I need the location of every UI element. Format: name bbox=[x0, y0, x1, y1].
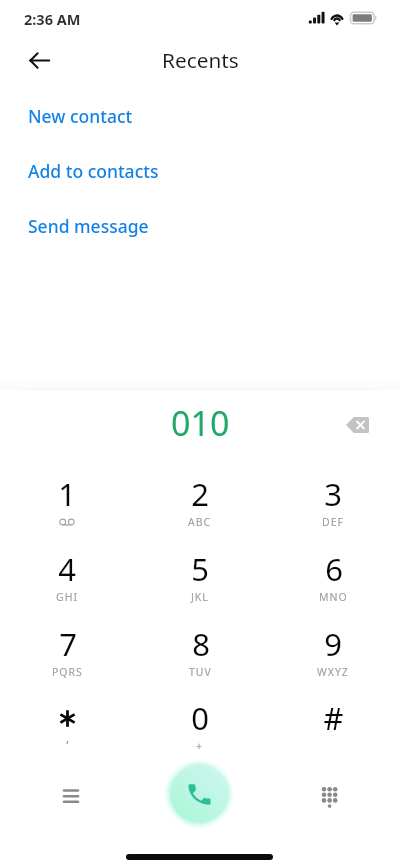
button[interactable]: 7 bbox=[23, 623, 111, 691]
staticText: MNO bbox=[319, 590, 348, 604]
staticText: DEF bbox=[322, 515, 344, 529]
staticText: 1 bbox=[58, 473, 76, 515]
staticText: TUV bbox=[189, 665, 212, 679]
button[interactable]: Dialpad bbox=[306, 773, 351, 818]
staticText: 6 bbox=[325, 548, 343, 590]
button[interactable]: # bbox=[289, 697, 377, 765]
button[interactable]: Back bbox=[18, 39, 60, 81]
staticText: ABC bbox=[188, 515, 212, 529]
button[interactable]: , bbox=[23, 697, 111, 765]
staticText: + bbox=[196, 739, 204, 753]
button[interactable]: 4 bbox=[23, 548, 111, 616]
button[interactable]: Call history bbox=[48, 773, 93, 818]
staticText: # bbox=[323, 697, 344, 739]
button[interactable]: New contact bbox=[0, 96, 400, 136]
button[interactable]: Add to contacts bbox=[0, 151, 400, 191]
staticText: Add to contacts bbox=[28, 159, 159, 183]
button[interactable]: 8 bbox=[156, 623, 244, 691]
button[interactable]: 3 bbox=[289, 473, 377, 541]
button[interactable]: 0 bbox=[156, 697, 244, 765]
staticText: New contact bbox=[28, 104, 133, 128]
button[interactable]: Call bbox=[163, 758, 235, 830]
staticText: 9 bbox=[324, 623, 342, 665]
staticText: GHI bbox=[56, 590, 78, 604]
staticText: PQRS bbox=[52, 665, 83, 679]
button[interactable]: 2 bbox=[156, 473, 244, 541]
staticText: JKL bbox=[191, 590, 209, 604]
staticText: 2:36 AM bbox=[24, 9, 81, 29]
button[interactable]: 6 bbox=[289, 548, 377, 616]
staticText: 8 bbox=[192, 623, 210, 665]
button[interactable]: 9 bbox=[289, 623, 377, 691]
staticText: 3 bbox=[324, 473, 342, 515]
staticText: Recents bbox=[162, 46, 239, 74]
button[interactable]: Send message bbox=[0, 206, 400, 246]
button[interactable]: 1 bbox=[23, 473, 111, 541]
staticText: 5 bbox=[191, 548, 209, 590]
staticText: 2 bbox=[191, 473, 209, 515]
staticText: 4 bbox=[58, 548, 76, 590]
staticText: 7 bbox=[59, 623, 77, 665]
staticText: , bbox=[66, 729, 70, 745]
staticText: Send message bbox=[28, 214, 149, 238]
button[interactable]: Backspace bbox=[337, 405, 377, 445]
button[interactable]: 5 bbox=[156, 548, 244, 616]
staticText: 010 bbox=[171, 400, 230, 446]
staticText: WXYZ bbox=[317, 665, 349, 679]
staticText: 0 bbox=[191, 697, 209, 739]
